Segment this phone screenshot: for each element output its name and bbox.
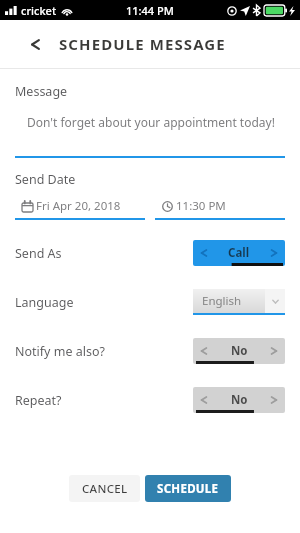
button[interactable]: 11:30 PM xyxy=(155,194,285,220)
button[interactable]: CANCEL xyxy=(69,475,140,502)
staticText: CANCEL xyxy=(82,481,128,497)
staticText: No xyxy=(231,392,248,408)
button[interactable]: No xyxy=(193,387,285,413)
staticText: 11:44 PM xyxy=(126,3,174,18)
staticText: 11:30 PM xyxy=(176,198,226,214)
staticText: Don't forget about your appointment toda… xyxy=(27,114,275,130)
button[interactable]: SCHEDULE xyxy=(145,475,231,502)
button[interactable]: English xyxy=(193,289,285,315)
staticText: Send As xyxy=(15,245,62,262)
staticText: No xyxy=(231,343,248,359)
staticText: Language xyxy=(15,294,74,311)
button[interactable]: Fri Apr 20, 2018 xyxy=(15,194,145,220)
staticText: cricket xyxy=(21,3,57,18)
staticText: Send Date xyxy=(15,171,76,188)
button[interactable]: Call xyxy=(193,240,285,266)
button[interactable]: No xyxy=(193,338,285,364)
staticText: Notify me also? xyxy=(15,343,105,360)
staticText: SCHEDULE MESSAGE xyxy=(59,34,226,54)
staticText: SCHEDULE xyxy=(157,481,219,497)
staticText: Message xyxy=(15,83,68,100)
staticText: Call xyxy=(228,245,250,261)
button[interactable]: Back xyxy=(22,31,48,57)
staticText: Fri Apr 20, 2018 xyxy=(36,198,121,214)
staticText: English xyxy=(202,293,242,309)
button[interactable]: Don't forget about your appointment toda… xyxy=(15,106,285,158)
staticText: Repeat? xyxy=(15,392,62,409)
